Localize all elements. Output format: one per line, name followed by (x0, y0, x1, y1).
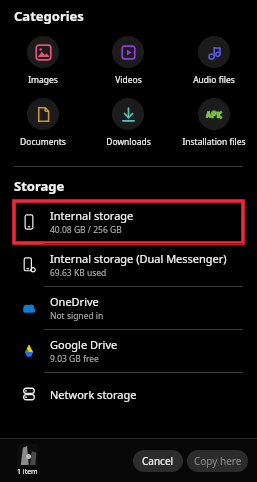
staticText: Google Drive (50, 337, 118, 352)
button[interactable]: Internal storage (14, 201, 243, 243)
button[interactable]: Videos (85, 36, 171, 86)
staticText: Not signed in (50, 310, 104, 322)
staticText: Cancel (142, 454, 174, 468)
staticText: Categories (14, 7, 84, 25)
staticText: Installation files (182, 136, 246, 148)
button[interactable]: Installation files (171, 98, 257, 148)
button[interactable]: Internal storage (Dual Messenger) (14, 244, 243, 286)
staticText: Videos (115, 74, 142, 86)
button[interactable]: Google Drive (14, 330, 243, 372)
button[interactable]: Selected item (17, 444, 38, 477)
staticText: 69.63 KB used (50, 267, 107, 279)
button[interactable]: Copy here (187, 450, 248, 472)
staticText: Network storage (50, 387, 137, 402)
button[interactable]: OneDrive (14, 287, 243, 329)
staticText: Internal storage (50, 208, 134, 223)
button[interactable]: Images (0, 36, 85, 86)
button[interactable]: Documents (0, 98, 85, 148)
staticText: Storage (14, 177, 65, 195)
staticText: OneDrive (50, 294, 99, 309)
staticText: 40.08 GB / 256 GB (50, 224, 122, 236)
button[interactable]: Audio files (171, 36, 257, 86)
button[interactable]: Downloads (85, 98, 171, 148)
staticText: 9.03 GB free (50, 353, 99, 365)
staticText: Audio files (193, 74, 235, 86)
button[interactable]: Cancel (133, 450, 183, 472)
staticText: Images (28, 74, 58, 86)
staticText: 1 item (17, 467, 38, 477)
staticText: Documents (20, 136, 66, 148)
staticText: Downloads (106, 136, 151, 148)
staticText: Internal storage (Dual Messenger) (50, 251, 227, 266)
button[interactable]: Network storage (14, 373, 243, 415)
staticText: Copy here (194, 454, 242, 468)
